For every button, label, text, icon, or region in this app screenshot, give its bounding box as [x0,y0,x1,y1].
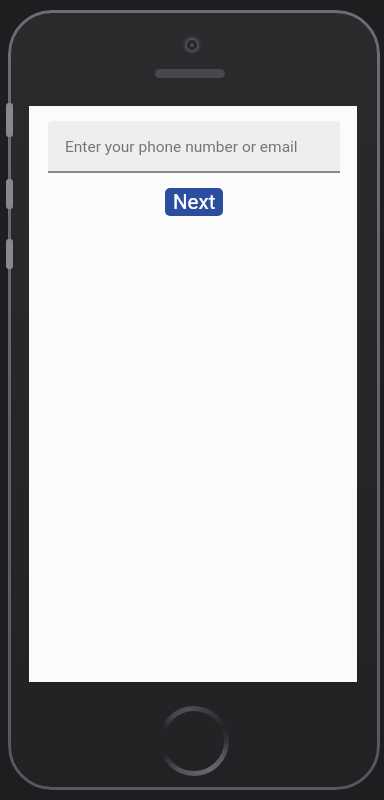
button[interactable]: Enter your phone number or email [48,121,340,173]
button[interactable]: Next [165,188,223,216]
staticText: Enter your phone number or email [65,138,298,156]
staticText: Next [173,190,216,214]
